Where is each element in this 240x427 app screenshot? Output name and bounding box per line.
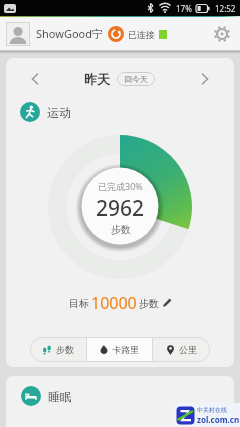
staticText: 卡路里 — [112, 344, 139, 355]
staticText: 步数 — [111, 223, 131, 236]
button[interactable]: 回今天 — [117, 72, 155, 86]
staticText: 步数 — [139, 297, 159, 310]
button[interactable]: ShowGood宁 — [36, 26, 104, 41]
staticText: 17% — [176, 3, 192, 14]
button[interactable] — [201, 73, 209, 85]
button[interactable]: 已连接 — [108, 26, 167, 42]
staticText: 昨天 — [84, 71, 110, 87]
staticText: 公里 — [179, 344, 197, 355]
staticText: 中关村在线 — [197, 406, 227, 414]
staticText: 12:52 — [215, 3, 236, 14]
staticText: 目标 — [69, 297, 89, 310]
button[interactable]: 卡路里 — [87, 337, 152, 362]
button[interactable] — [6, 22, 30, 46]
staticText: 10000 — [91, 292, 137, 314]
button[interactable]: 公里 — [153, 337, 210, 362]
button[interactable]: 目标 — [69, 292, 172, 314]
staticText: 已连接 — [128, 29, 155, 40]
staticText: 步数 — [56, 344, 74, 355]
staticText: 2962 — [96, 194, 145, 223]
staticText: 已完成30% — [98, 180, 143, 192]
button[interactable]: 睡眠 — [21, 386, 72, 406]
staticText: zol.com.cn — [197, 414, 240, 425]
button[interactable] — [31, 73, 39, 85]
staticText: 睡眠 — [48, 389, 72, 404]
button[interactable] — [212, 24, 232, 44]
staticText: 运动 — [47, 105, 71, 120]
staticText: 回今天 — [124, 74, 148, 84]
button[interactable]: 步数 — [30, 337, 86, 362]
button[interactable]: 运动 — [20, 102, 71, 122]
